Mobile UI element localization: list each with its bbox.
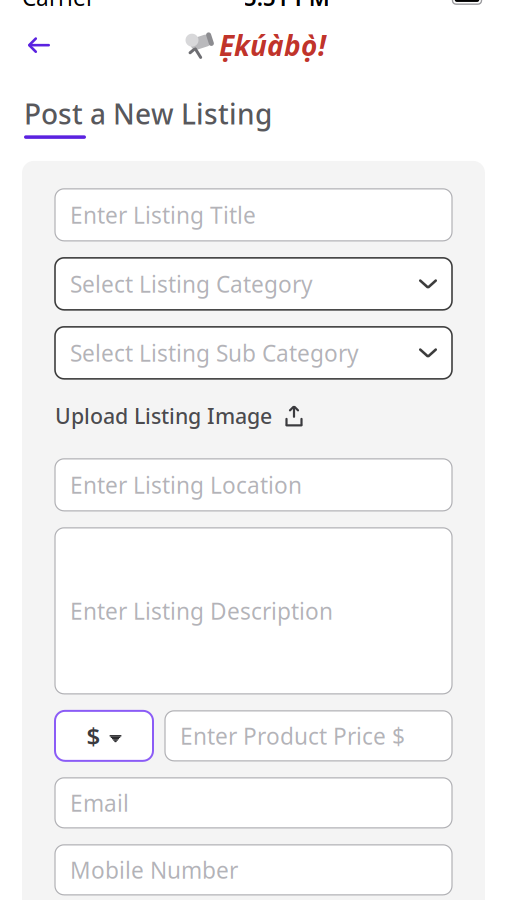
staticText: Carrier — [22, 0, 95, 12]
button[interactable]: Mobile Number — [55, 845, 452, 895]
staticText: Post a New Listing — [24, 95, 272, 132]
button[interactable]: Email — [55, 778, 452, 828]
staticText: Select Listing Sub Category — [70, 338, 359, 368]
button[interactable]: Back — [16, 25, 62, 65]
button[interactable]: Enter Listing Location — [55, 459, 452, 511]
button[interactable]: Upload Listing Image — [55, 399, 452, 433]
staticText: Enter Listing Location — [70, 470, 302, 500]
staticText: Select Listing Category — [70, 269, 313, 299]
button[interactable]: Enter Product Price $ — [165, 711, 452, 761]
staticText: Ẹkúàbọ̀! — [219, 27, 326, 64]
staticText: Upload Listing Image — [55, 402, 272, 430]
staticText: Enter Listing Title — [70, 200, 256, 230]
button[interactable]: Select currency — [55, 711, 153, 761]
button[interactable]: Enter Listing Description — [55, 528, 452, 694]
staticText: Email — [70, 788, 129, 818]
staticText: Enter Listing Description — [70, 596, 333, 626]
button[interactable]: Enter Listing Title — [55, 189, 452, 241]
staticText: $ — [86, 720, 100, 752]
button[interactable]: Select Listing Category — [55, 258, 452, 310]
staticText: Mobile Number — [70, 855, 238, 885]
button[interactable]: Select Listing Sub Category — [55, 327, 452, 379]
staticText: Enter Product Price $ — [180, 721, 405, 751]
staticText: 5:51 PM — [244, 0, 330, 12]
